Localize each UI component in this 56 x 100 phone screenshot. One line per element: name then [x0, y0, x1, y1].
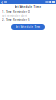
- staticText: 2. Time Reminder S: [2, 18, 29, 22]
- staticText: 1. Time Reminder D: [2, 10, 30, 14]
- button[interactable]: Menu: [3, 0, 7, 4]
- staticText: Set Schedule Time: [15, 25, 40, 29]
- staticText: Set Schedule Time: [14, 5, 41, 9]
- button[interactable]: Back: [0, 0, 3, 4]
- staticText: ‹: [1, 0, 3, 6]
- button[interactable]: Set Schedule Time: [11, 24, 45, 30]
- staticText: set reminder alert: [2, 14, 27, 18]
